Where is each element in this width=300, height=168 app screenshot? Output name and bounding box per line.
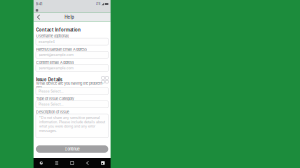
staticText: parent@example.com bbox=[38, 53, 73, 57]
staticText: Description of Issue bbox=[36, 110, 69, 114]
staticText: Please Select... bbox=[38, 102, 63, 106]
staticText: Issue Details bbox=[36, 77, 62, 82]
staticText: Username (optional) bbox=[36, 34, 69, 38]
staticText: example4 bbox=[38, 39, 54, 44]
button[interactable]: Back bbox=[80, 158, 95, 168]
staticText: *Do not share any sensitive personal inf… bbox=[39, 115, 105, 133]
button[interactable]: Screenshot bbox=[95, 158, 111, 168]
button[interactable]: Home bbox=[64, 158, 80, 168]
staticText: Help bbox=[65, 14, 75, 20]
staticText: Please Select... bbox=[38, 89, 63, 93]
staticText: Type of Issue Category bbox=[36, 96, 74, 101]
button[interactable]: Menu bbox=[49, 158, 64, 168]
staticText: Parent/Guardian Email Address bbox=[36, 47, 87, 52]
staticText: 9:41 bbox=[36, 2, 43, 6]
button[interactable]: Assistant bbox=[34, 158, 49, 168]
staticText: Contact Information bbox=[36, 27, 81, 32]
staticText: What device are you having the problem o… bbox=[36, 81, 102, 90]
staticText: Continue bbox=[65, 147, 80, 151]
button[interactable]: Back bbox=[35, 13, 43, 21]
staticText: LTE bbox=[96, 2, 101, 6]
staticText: Confirm Email Address bbox=[36, 60, 74, 65]
button[interactable]: Continue bbox=[36, 145, 108, 153]
staticText: parent@example.com bbox=[38, 66, 73, 70]
